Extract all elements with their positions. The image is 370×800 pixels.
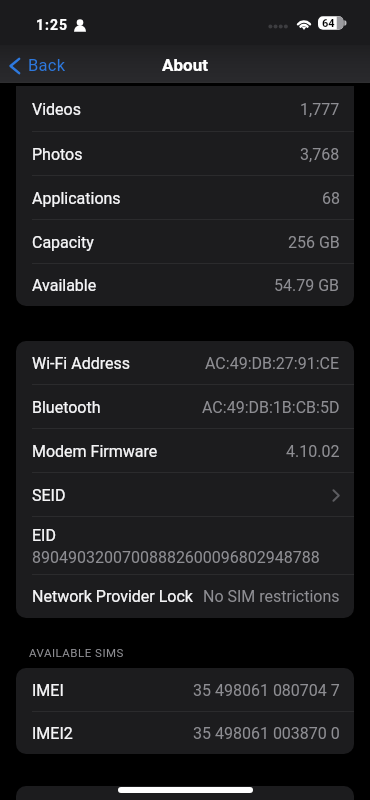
staticText: IMEI2 [32,724,73,743]
staticText: SEID [32,486,66,505]
staticText: 1:25 [36,17,69,33]
staticText: AC:49:DB:27:91:CE [205,354,340,373]
staticText: Modem Firmware [32,442,158,461]
staticText: AVAILABLE SIMS [29,646,124,659]
staticText: Applications [32,189,121,208]
staticText: Videos [32,100,81,119]
staticText: 35 498061 080704 7 [193,681,340,700]
staticText: IMEI [32,681,64,700]
button[interactable]: IMEI2 [16,712,354,754]
button[interactable]: Videos [16,86,354,132]
staticText: 256 GB [288,233,340,252]
staticText: 64 [322,17,335,30]
button[interactable]: Applications [16,176,354,220]
staticText: No SIM restrictions [203,587,340,606]
staticText: Available [32,276,97,295]
button[interactable]: EID [16,517,354,575]
staticText: Wi-Fi Address [32,354,130,373]
button[interactable]: Wi-Fi Address [16,341,354,385]
staticText: 3,768 [300,145,340,164]
staticText: AC:49:DB:1B:CB:5D [202,398,340,417]
button[interactable]: SEID [16,473,354,517]
staticText: EID [32,526,56,545]
staticText: Network Provider Lock [32,587,193,606]
button[interactable]: Back [0,52,76,77]
button[interactable]: IMEI [16,668,354,712]
staticText: 68 [322,189,340,208]
staticText: Photos [32,145,83,164]
button[interactable]: Modem Firmware [16,429,354,473]
staticText: 35 498061 003870 0 [193,724,340,743]
staticText: Bluetooth [32,398,101,417]
staticText: 54.79 GB [274,276,340,295]
button[interactable]: Available [16,264,354,306]
staticText: 4.10.02 [286,442,340,461]
button[interactable]: Network Provider Lock [16,575,354,618]
staticText: Back [28,56,66,75]
button[interactable]: Bluetooth [16,385,354,429]
button[interactable]: Capacity [16,220,354,264]
button[interactable]: Photos [16,132,354,176]
staticText: Capacity [32,233,94,252]
staticText: 1,777 [300,100,340,119]
staticText: 89049032007008882600096802948788 [32,548,320,567]
staticText: About [162,55,208,75]
